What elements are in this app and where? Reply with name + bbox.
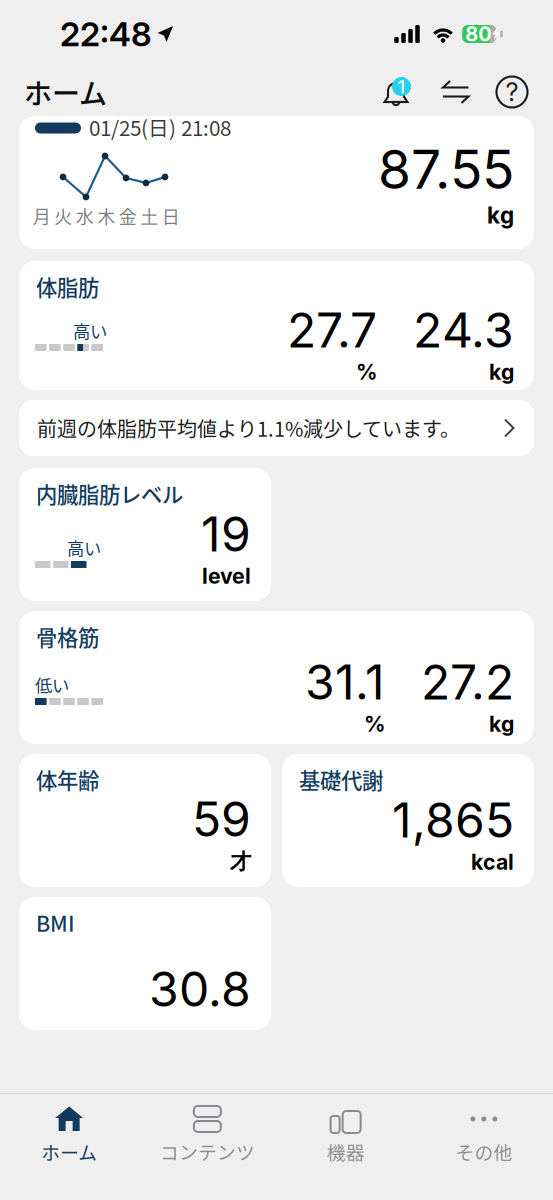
staticText: 内臓脂肪レベル <box>36 478 183 509</box>
button[interactable]: コンテンツ <box>138 1095 276 1199</box>
staticText: 日 <box>162 203 180 229</box>
staticText: 59 <box>192 790 251 848</box>
staticText: 低い <box>35 672 69 697</box>
staticText: 80 <box>465 22 491 46</box>
staticText: % <box>364 711 385 737</box>
staticText: 31.1 <box>305 653 385 711</box>
button[interactable]: ホーム <box>0 1095 138 1199</box>
staticText: 才 <box>230 848 251 875</box>
staticText: 1 <box>397 75 405 98</box>
staticText: 24.3 <box>413 301 514 359</box>
staticText: kg <box>487 202 514 229</box>
button[interactable]: 体脂肪 <box>19 261 534 390</box>
staticText: 機器 <box>327 1138 365 1165</box>
staticText: 1,865 <box>392 791 514 849</box>
staticText: 基礎代謝 <box>299 764 383 795</box>
staticText: 87.55 <box>378 137 514 202</box>
staticText: kg <box>489 359 514 385</box>
staticText: その他 <box>455 1138 512 1165</box>
button[interactable]: 前週の体脂肪平均値より1.1%減少しています。 <box>19 400 534 456</box>
staticText: 金 <box>119 203 137 229</box>
button[interactable]: その他 <box>415 1095 553 1199</box>
staticText: ホーム <box>41 1138 97 1165</box>
staticText: 30.8 <box>149 960 251 1018</box>
button[interactable]: 内臓脂肪レベル <box>19 468 271 601</box>
button[interactable]: 基礎代謝 <box>282 754 534 887</box>
staticText: 体脂肪 <box>36 271 99 302</box>
staticText: 19 <box>201 505 251 563</box>
button[interactable]: ヘルプ <box>491 71 533 113</box>
button[interactable]: 通知 <box>379 71 421 113</box>
staticText: 高い <box>73 318 107 343</box>
staticText: 骨格筋 <box>36 621 99 652</box>
staticText: 水 <box>76 203 94 229</box>
staticText: kg <box>489 711 514 737</box>
button[interactable]: 骨格筋 <box>19 611 534 744</box>
button[interactable]: BMI <box>19 897 271 1030</box>
staticText: 木 <box>97 203 115 229</box>
staticText: 体年齢 <box>36 764 99 795</box>
staticText: 土 <box>140 203 158 229</box>
staticText: % <box>356 359 377 385</box>
button[interactable]: 機器 <box>276 1095 415 1199</box>
staticText: 火 <box>54 203 72 229</box>
staticText: ? <box>505 77 518 107</box>
staticText: BMI <box>36 907 75 938</box>
staticText: 27.7 <box>287 301 377 359</box>
staticText: 27.2 <box>421 653 514 711</box>
staticText: level <box>202 563 251 589</box>
staticText: ホーム <box>24 72 107 112</box>
button[interactable]: 01/25(日) 21:08 <box>19 116 534 249</box>
staticText: 前週の体脂肪平均値より1.1%減少しています。 <box>37 413 460 442</box>
staticText: kcal <box>471 849 514 875</box>
button[interactable]: 体年齢 <box>19 754 271 887</box>
staticText: 22:48 <box>60 14 152 54</box>
staticText: コンテンツ <box>160 1138 255 1165</box>
staticText: 月 <box>33 203 51 229</box>
button[interactable]: 同期 <box>435 71 477 113</box>
staticText: 高い <box>67 535 101 560</box>
staticText: 01/25(日) 21:08 <box>89 112 231 142</box>
